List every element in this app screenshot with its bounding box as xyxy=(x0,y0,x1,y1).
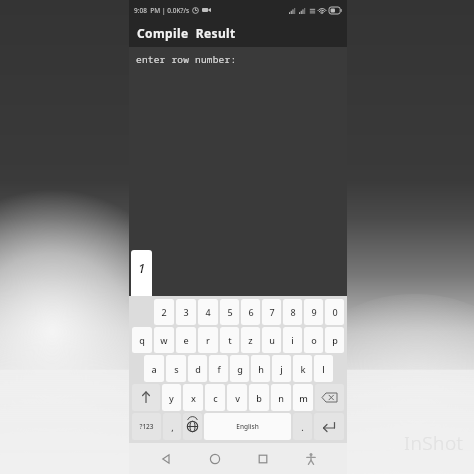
button[interactable]: o xyxy=(304,327,323,353)
staticText: . xyxy=(301,421,304,433)
staticText: 4 xyxy=(205,306,211,318)
button[interactable]: 9 xyxy=(304,299,323,325)
button[interactable]: 5 xyxy=(220,299,239,325)
button[interactable]: n xyxy=(271,384,291,411)
staticText: s xyxy=(174,363,179,375)
staticText: 2 xyxy=(161,306,167,318)
button[interactable]: Enter xyxy=(314,413,344,440)
button[interactable]: Recents xyxy=(249,443,277,474)
staticText: a xyxy=(151,363,157,375)
button[interactable]: v xyxy=(227,384,247,411)
staticText: u xyxy=(269,334,275,346)
button[interactable]: m xyxy=(293,384,313,411)
staticText: o xyxy=(311,334,317,346)
staticText: enter row number: xyxy=(136,53,237,66)
button[interactable]: w xyxy=(154,327,174,353)
staticText: k xyxy=(300,363,306,375)
staticText: ?123 xyxy=(139,422,154,431)
staticText: v xyxy=(235,392,240,404)
staticText: , xyxy=(171,421,174,433)
staticText: t xyxy=(228,334,232,346)
button[interactable]: Change keyboard language xyxy=(183,413,202,440)
staticText: b xyxy=(256,392,262,404)
staticText: 0 xyxy=(332,306,338,318)
staticText: InShot xyxy=(404,430,464,456)
staticText: h xyxy=(258,363,264,375)
staticText: x xyxy=(191,392,196,404)
button[interactable]: 3 xyxy=(176,299,196,325)
button[interactable]: a xyxy=(144,355,164,382)
button[interactable]: Shift xyxy=(132,384,160,411)
button[interactable]: Accessibility xyxy=(297,443,325,474)
button[interactable]: x xyxy=(183,384,203,411)
staticText: z xyxy=(248,334,253,346)
staticText: j xyxy=(280,363,283,375)
staticText: m xyxy=(299,392,308,404)
button[interactable]: s xyxy=(166,355,186,382)
button[interactable]: z xyxy=(241,327,260,353)
button[interactable]: Home xyxy=(201,443,229,474)
button[interactable]: ?123 xyxy=(132,413,161,440)
staticText: 1 xyxy=(138,259,146,277)
staticText: 7 xyxy=(269,306,275,318)
staticText: g xyxy=(237,363,243,375)
staticText: f xyxy=(217,363,221,375)
button[interactable]: . xyxy=(293,413,312,440)
button[interactable]: y xyxy=(162,384,181,411)
staticText: l xyxy=(322,363,325,375)
button[interactable]: 7 xyxy=(262,299,281,325)
staticText: 9:08 PM | 0.0K?/s xyxy=(134,6,190,15)
staticText: n xyxy=(278,392,284,404)
button[interactable]: 8 xyxy=(283,299,302,325)
staticText: 3 xyxy=(183,306,189,318)
staticText: w xyxy=(160,334,168,346)
staticText: 5 xyxy=(227,306,233,318)
staticText: Compile Result xyxy=(137,25,236,41)
button[interactable]: p xyxy=(325,327,344,353)
button[interactable]: l xyxy=(314,355,333,382)
button[interactable]: u xyxy=(262,327,281,353)
staticText: r xyxy=(206,334,210,346)
staticText: e xyxy=(183,334,189,346)
button[interactable]: 0 xyxy=(325,299,344,325)
staticText: q xyxy=(139,334,145,346)
button[interactable]: 2 xyxy=(154,299,174,325)
button[interactable]: 1 xyxy=(131,250,152,310)
button[interactable]: , xyxy=(163,413,181,440)
button[interactable]: t xyxy=(220,327,239,353)
button[interactable]: g xyxy=(230,355,249,382)
staticText: 6 xyxy=(248,306,254,318)
button[interactable]: e xyxy=(176,327,196,353)
button[interactable]: 4 xyxy=(198,299,218,325)
button[interactable]: i xyxy=(283,327,302,353)
staticText: English xyxy=(236,422,259,431)
staticText: c xyxy=(213,392,218,404)
button[interactable]: q xyxy=(132,327,152,353)
button[interactable]: b xyxy=(249,384,269,411)
button[interactable]: h xyxy=(251,355,270,382)
button[interactable]: English xyxy=(204,413,291,440)
button[interactable]: j xyxy=(272,355,291,382)
button[interactable]: 6 xyxy=(241,299,260,325)
button[interactable]: f xyxy=(209,355,228,382)
staticText: i xyxy=(291,334,294,346)
staticText: p xyxy=(332,334,338,346)
button[interactable]: k xyxy=(293,355,312,382)
button[interactable]: Backspace xyxy=(315,384,344,411)
button[interactable]: Back xyxy=(152,443,180,474)
button[interactable]: r xyxy=(198,327,218,353)
button[interactable]: c xyxy=(205,384,225,411)
staticText: 8 xyxy=(290,306,296,318)
staticText: d xyxy=(195,363,201,375)
staticText: y xyxy=(169,392,174,404)
button[interactable]: d xyxy=(188,355,207,382)
staticText: 9 xyxy=(311,306,317,318)
